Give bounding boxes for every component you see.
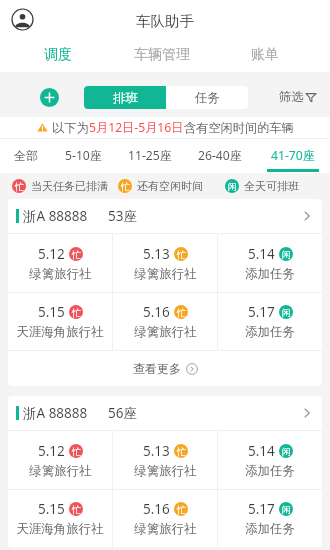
button[interactable]: 车辆管理 [110, 38, 213, 72]
button[interactable]: 5.17 [218, 293, 322, 350]
staticText: 当天任务已排满 [31, 179, 108, 193]
staticText: 天涯海角旅行社 [16, 324, 104, 340]
staticText: 忙 [177, 504, 186, 515]
button[interactable]: 查看更多 [8, 351, 322, 386]
button[interactable]: 5.14 [218, 431, 322, 489]
staticText: 闲 [282, 446, 291, 457]
staticText: 5月12日-5月16日 [89, 119, 184, 136]
staticText: 26-40座 [198, 147, 242, 164]
staticText: 5.14 [248, 245, 275, 263]
button[interactable]: 5.15 [8, 490, 112, 547]
staticText: 忙 [177, 307, 186, 318]
button[interactable]: 账单 [213, 38, 316, 72]
staticText: 绿篱旅行社 [29, 266, 92, 282]
button[interactable]: 浙A 88888 [8, 199, 322, 233]
staticText: 5.13 [143, 245, 170, 263]
button[interactable]: 5.16 [113, 490, 217, 547]
staticText: 绿篱旅行社 [134, 324, 197, 340]
button[interactable]: 5.16 [113, 293, 217, 350]
button[interactable]: 5.12 [8, 431, 112, 489]
staticText: 5.17 [248, 303, 275, 321]
staticText: 浙A 88888 [23, 404, 88, 422]
button[interactable]: 5.12 [8, 234, 112, 292]
staticText: 忙 [72, 446, 81, 457]
staticText: 车辆管理 [134, 46, 190, 64]
staticText: 闲 [228, 181, 237, 192]
button[interactable]: Account [11, 8, 34, 31]
button[interactable]: 忙 [12, 179, 108, 193]
staticText: 闲 [282, 249, 291, 260]
staticText: 5.15 [38, 500, 65, 518]
staticText: 11-25座 [128, 147, 172, 164]
staticText: 闲 [282, 307, 291, 318]
button[interactable]: 全部 [14, 139, 39, 173]
staticText: 天涯海角旅行社 [16, 521, 104, 537]
staticText: 排班 [113, 90, 138, 106]
staticText: 以下为 [52, 120, 89, 135]
button[interactable]: 调度 [6, 38, 110, 72]
staticText: 车队助手 [136, 12, 194, 30]
staticText: 筛选 [279, 89, 304, 105]
button[interactable]: 任务 [166, 86, 248, 109]
staticText: 53座 [108, 207, 137, 225]
staticText: 5.12 [38, 442, 65, 460]
staticText: 5-10座 [65, 147, 103, 164]
button[interactable]: 26-40座 [198, 139, 242, 173]
button[interactable]: 5-10座 [65, 139, 103, 173]
staticText: 56座 [108, 404, 137, 422]
staticText: 含有空闲时间的车辆 [184, 120, 294, 135]
staticText: 忙 [15, 181, 24, 192]
staticText: 查看更多 [133, 361, 181, 376]
staticText: 绿篱旅行社 [29, 463, 92, 479]
button[interactable]: 闲 [225, 179, 299, 193]
button[interactable]: 11-25座 [128, 139, 172, 173]
staticText: 忙 [72, 504, 81, 515]
staticText: 绿篱旅行社 [134, 521, 197, 537]
staticText: 41-70座 [271, 147, 315, 164]
staticText: 5.14 [248, 442, 275, 460]
staticText: 5.16 [143, 500, 170, 518]
staticText: 5.16 [143, 303, 170, 321]
staticText: 调度 [44, 46, 72, 64]
staticText: 浙A 88888 [23, 207, 88, 225]
staticText: 忙 [177, 446, 186, 457]
button[interactable]: 浙A 88888 [8, 396, 322, 430]
button[interactable]: 41-70座 [267, 139, 319, 173]
staticText: 忙 [177, 249, 186, 260]
staticText: 添加任务 [245, 463, 295, 479]
staticText: 绿篱旅行社 [134, 463, 197, 479]
button[interactable]: 5.13 [113, 431, 217, 489]
staticText: 5.13 [143, 442, 170, 460]
staticText: 任务 [195, 90, 220, 106]
button[interactable]: 排班 [84, 86, 166, 109]
button[interactable]: 5.14 [218, 234, 322, 292]
button[interactable]: 筛选 [279, 89, 317, 105]
button[interactable]: 忙 [118, 179, 203, 193]
staticText: 添加任务 [245, 521, 295, 537]
button[interactable]: 5.17 [218, 490, 322, 547]
staticText: 还有空闲时间 [137, 179, 203, 193]
button[interactable]: 5.13 [113, 234, 217, 292]
staticText: 添加任务 [245, 266, 295, 282]
staticText: 全部 [14, 148, 39, 163]
staticText: 绿篱旅行社 [134, 266, 197, 282]
button[interactable]: Add [40, 88, 59, 107]
staticText: 全天可排班 [244, 179, 299, 193]
staticText: 闲 [282, 504, 291, 515]
staticText: 5.15 [38, 303, 65, 321]
staticText: 忙 [72, 249, 81, 260]
staticText: 忙 [72, 307, 81, 318]
button[interactable]: 5.15 [8, 293, 112, 350]
staticText: 添加任务 [245, 324, 295, 340]
staticText: 账单 [251, 46, 279, 64]
staticText: 忙 [121, 181, 130, 192]
staticText: 5.12 [38, 245, 65, 263]
staticText: 5.17 [248, 500, 275, 518]
